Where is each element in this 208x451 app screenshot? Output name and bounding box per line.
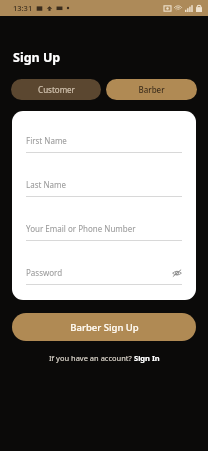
button[interactable]: Sign In bbox=[134, 353, 160, 363]
button[interactable]: Password bbox=[26, 267, 182, 278]
staticText: First Name bbox=[26, 135, 182, 146]
button[interactable]: Barber bbox=[106, 79, 197, 100]
staticText: 13:31 bbox=[13, 3, 33, 13]
staticText: If you have an account? bbox=[49, 353, 134, 363]
button[interactable]: Barber Sign Up bbox=[12, 313, 196, 341]
staticText: Barber Sign Up bbox=[70, 321, 139, 334]
staticText: Last Name bbox=[26, 179, 182, 190]
staticText: Barber bbox=[138, 84, 165, 95]
button[interactable]: Last Name bbox=[26, 179, 182, 190]
button[interactable]: First Name bbox=[26, 135, 182, 146]
staticText: Sign Up bbox=[13, 49, 61, 66]
staticText: Sign In bbox=[134, 353, 160, 363]
button[interactable]: Customer bbox=[11, 79, 101, 100]
button[interactable]: Your Email or Phone Number bbox=[26, 223, 182, 234]
staticText: Your Email or Phone Number bbox=[26, 223, 182, 234]
staticText: Customer bbox=[38, 84, 75, 95]
staticText: Password bbox=[26, 267, 172, 278]
other: Show password bbox=[172, 269, 182, 277]
